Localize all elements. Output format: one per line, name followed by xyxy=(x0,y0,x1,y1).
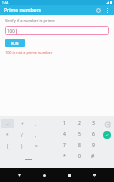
button[interactable]: + xyxy=(16,119,28,128)
staticText: 5 xyxy=(78,131,81,138)
button[interactable]: Settings xyxy=(94,6,103,15)
button[interactable]: 2 xyxy=(72,118,86,129)
button[interactable]: . xyxy=(30,119,42,128)
button[interactable]: 4 xyxy=(57,129,72,140)
button[interactable]: * xyxy=(57,151,72,162)
button[interactable]: ) xyxy=(16,141,28,150)
staticText: 3 xyxy=(92,120,95,127)
staticText: 100 is not a prime number xyxy=(5,50,53,55)
button[interactable]: Enter xyxy=(103,131,111,139)
staticText: 9 xyxy=(92,142,95,149)
button[interactable]: 9 xyxy=(86,140,100,151)
button[interactable]: Home xyxy=(39,170,49,180)
button[interactable]: * xyxy=(1,130,14,139)
button[interactable]: 0 xyxy=(72,151,86,162)
button[interactable]: , xyxy=(30,130,42,139)
staticText: - xyxy=(7,121,9,127)
button[interactable]: 1 xyxy=(57,118,72,129)
button[interactable]: 5 xyxy=(72,129,86,140)
button[interactable]: = xyxy=(30,141,42,150)
button[interactable]: Back xyxy=(14,170,24,180)
staticText: * xyxy=(6,132,9,138)
staticText: 100 xyxy=(7,28,15,34)
button[interactable]: Backspace xyxy=(103,120,111,128)
button[interactable]: 7 xyxy=(57,140,72,151)
button[interactable]: # xyxy=(86,151,100,162)
staticText: = xyxy=(35,143,38,149)
staticText: Verify if a number is prime xyxy=(5,18,55,23)
staticText: , xyxy=(35,132,37,138)
staticText: 7 xyxy=(63,142,66,149)
staticText: 6 xyxy=(92,131,95,138)
staticText: + xyxy=(21,121,24,127)
staticText: 1 xyxy=(63,120,66,127)
staticText: ) xyxy=(21,143,23,149)
staticText: Prime numbers xyxy=(4,7,41,14)
button[interactable]: - xyxy=(1,119,14,128)
staticText: 0 xyxy=(78,153,81,160)
staticText: ( xyxy=(7,143,9,149)
button[interactable]: RUN xyxy=(5,39,25,47)
button[interactable]: Recents xyxy=(64,170,74,180)
button[interactable]: Space xyxy=(19,151,38,168)
staticText: * xyxy=(63,153,66,160)
button[interactable]: 100 xyxy=(5,26,109,35)
button[interactable]: 6 xyxy=(86,129,100,140)
staticText: / xyxy=(21,132,23,138)
staticText: 2 xyxy=(78,120,81,127)
staticText: 1:54 xyxy=(2,1,9,5)
staticText: 8 xyxy=(78,142,81,149)
button[interactable]: 8 xyxy=(72,140,86,151)
staticText: . xyxy=(35,121,37,127)
button[interactable]: ( xyxy=(1,141,14,150)
button[interactable]: Hide keyboard xyxy=(89,170,99,180)
staticText: 4 xyxy=(63,131,66,138)
staticText: # xyxy=(91,153,95,160)
button[interactable]: 3 xyxy=(86,118,100,129)
button[interactable]: / xyxy=(16,130,28,139)
staticText: RUN xyxy=(11,41,19,46)
button[interactable]: More options xyxy=(103,6,112,15)
